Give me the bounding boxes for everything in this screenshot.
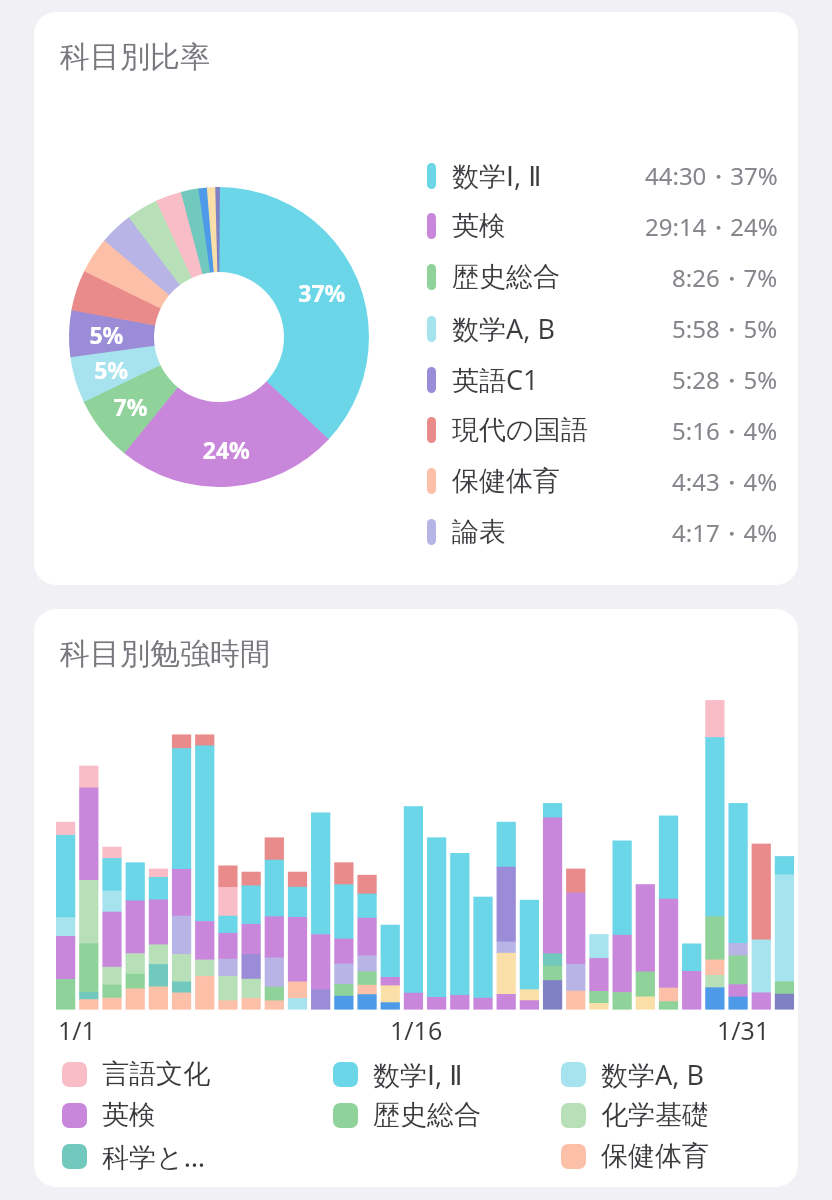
- button[interactable]: 論表: [394, 508, 798, 556]
- staticText: 5:58・5%: [672, 312, 778, 345]
- staticText: 英検: [102, 1098, 156, 1132]
- staticText: 英検: [452, 209, 506, 243]
- staticText: 科目別勉強時間: [60, 635, 270, 673]
- staticText: 数学Ⅰ, Ⅱ: [373, 1056, 463, 1093]
- button[interactable]: 科目別比率: [34, 12, 798, 585]
- button[interactable]: 数学A, B: [561, 1055, 705, 1093]
- staticText: 数学A, B: [601, 1056, 705, 1093]
- button[interactable]: 科目別勉強時間: [34, 609, 798, 1187]
- staticText: 言語文化: [102, 1057, 210, 1091]
- staticText: 44:30・37%: [645, 159, 778, 192]
- button[interactable]: 言語文化: [62, 1055, 210, 1093]
- staticText: 1/31: [717, 1013, 770, 1047]
- staticText: 4:43・4%: [672, 465, 778, 498]
- staticText: 数学Ⅰ, Ⅱ: [452, 157, 542, 194]
- button[interactable]: 保健体育: [561, 1137, 709, 1175]
- staticText: 化学基礎: [601, 1098, 709, 1132]
- staticText: 5:16・4%: [672, 414, 778, 447]
- staticText: 英語C1: [452, 361, 539, 398]
- staticText: 29:14・24%: [645, 210, 778, 243]
- staticText: 歴史総合: [373, 1098, 481, 1132]
- button[interactable]: 数学Ⅰ, Ⅱ: [394, 151, 798, 199]
- button[interactable]: 科学と…: [62, 1137, 205, 1175]
- staticText: 科学と…: [102, 1138, 205, 1175]
- staticText: 現代の国語: [452, 413, 588, 447]
- staticText: 数学A, B: [452, 310, 556, 347]
- staticText: 8:26・7%: [672, 261, 778, 294]
- button[interactable]: 化学基礎: [561, 1096, 709, 1134]
- staticText: 5:28・5%: [672, 363, 778, 396]
- staticText: 1/16: [390, 1013, 443, 1047]
- button[interactable]: 歴史総合: [333, 1096, 481, 1134]
- button[interactable]: 英検: [394, 202, 798, 250]
- staticText: 保健体育: [452, 464, 560, 498]
- button[interactable]: 現代の国語: [394, 406, 798, 454]
- staticText: 1/1: [58, 1013, 96, 1047]
- staticText: 論表: [452, 515, 506, 549]
- staticText: 4:17・4%: [672, 516, 778, 549]
- button[interactable]: 歴史総合: [394, 253, 798, 301]
- staticText: 保健体育: [601, 1139, 709, 1173]
- button[interactable]: 英検: [62, 1096, 156, 1134]
- button[interactable]: 保健体育: [394, 457, 798, 505]
- button[interactable]: 数学A, B: [394, 304, 798, 352]
- button[interactable]: 英語C1: [394, 355, 798, 403]
- staticText: 科目別比率: [60, 38, 210, 76]
- button[interactable]: 数学Ⅰ, Ⅱ: [333, 1055, 463, 1093]
- staticText: 歴史総合: [452, 260, 560, 294]
